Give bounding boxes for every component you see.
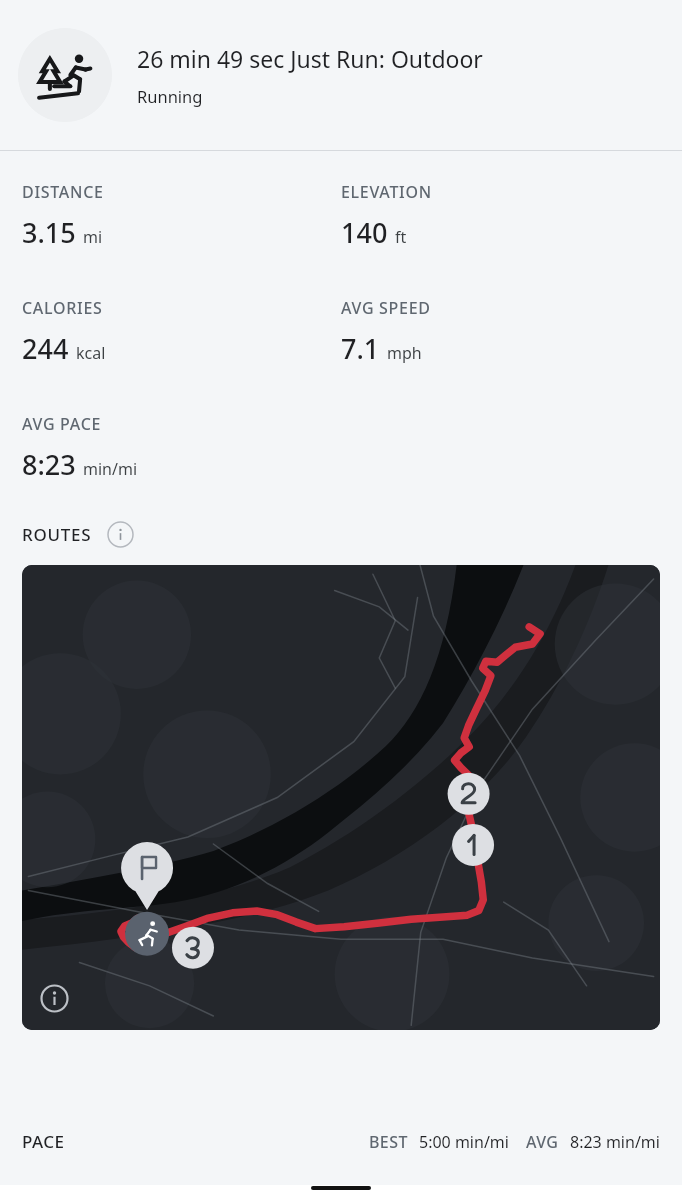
button[interactable]: 26 min 49 sec Just Run: Outdoor bbox=[0, 0, 682, 150]
staticText: ROUTES bbox=[22, 523, 92, 546]
button[interactable]: PACE bbox=[0, 1124, 682, 1159]
staticText: mph bbox=[387, 342, 422, 364]
staticText: AVG SPEED bbox=[341, 297, 431, 319]
staticText: 26 min 49 sec Just Run: Outdoor bbox=[137, 43, 483, 74]
staticText: AVG PACE bbox=[22, 413, 102, 435]
staticText: 5:00 min/mi bbox=[419, 1131, 509, 1153]
staticText: ft bbox=[395, 226, 407, 248]
staticText: ELEVATION bbox=[341, 181, 432, 203]
staticText: 3.15 bbox=[22, 214, 76, 251]
button[interactable]: Route map bbox=[22, 565, 660, 1030]
staticText: 140 bbox=[341, 214, 388, 251]
staticText: PACE bbox=[22, 1130, 65, 1153]
staticText: CALORIES bbox=[22, 297, 103, 319]
staticText: AVG bbox=[526, 1131, 559, 1153]
staticText: DISTANCE bbox=[22, 181, 104, 203]
staticText: 8:23 bbox=[22, 446, 76, 483]
staticText: Running bbox=[137, 85, 203, 107]
staticText: min/mi bbox=[83, 458, 138, 480]
button[interactable]: Map attribution info bbox=[38, 982, 70, 1014]
staticText: BEST bbox=[369, 1131, 408, 1153]
staticText: 7.1 bbox=[341, 330, 380, 367]
staticText: 244 bbox=[22, 330, 69, 367]
button[interactable]: Routes info bbox=[105, 519, 135, 549]
staticText: mi bbox=[83, 226, 103, 248]
staticText: 8:23 min/mi bbox=[570, 1131, 660, 1153]
staticText: kcal bbox=[76, 342, 106, 364]
